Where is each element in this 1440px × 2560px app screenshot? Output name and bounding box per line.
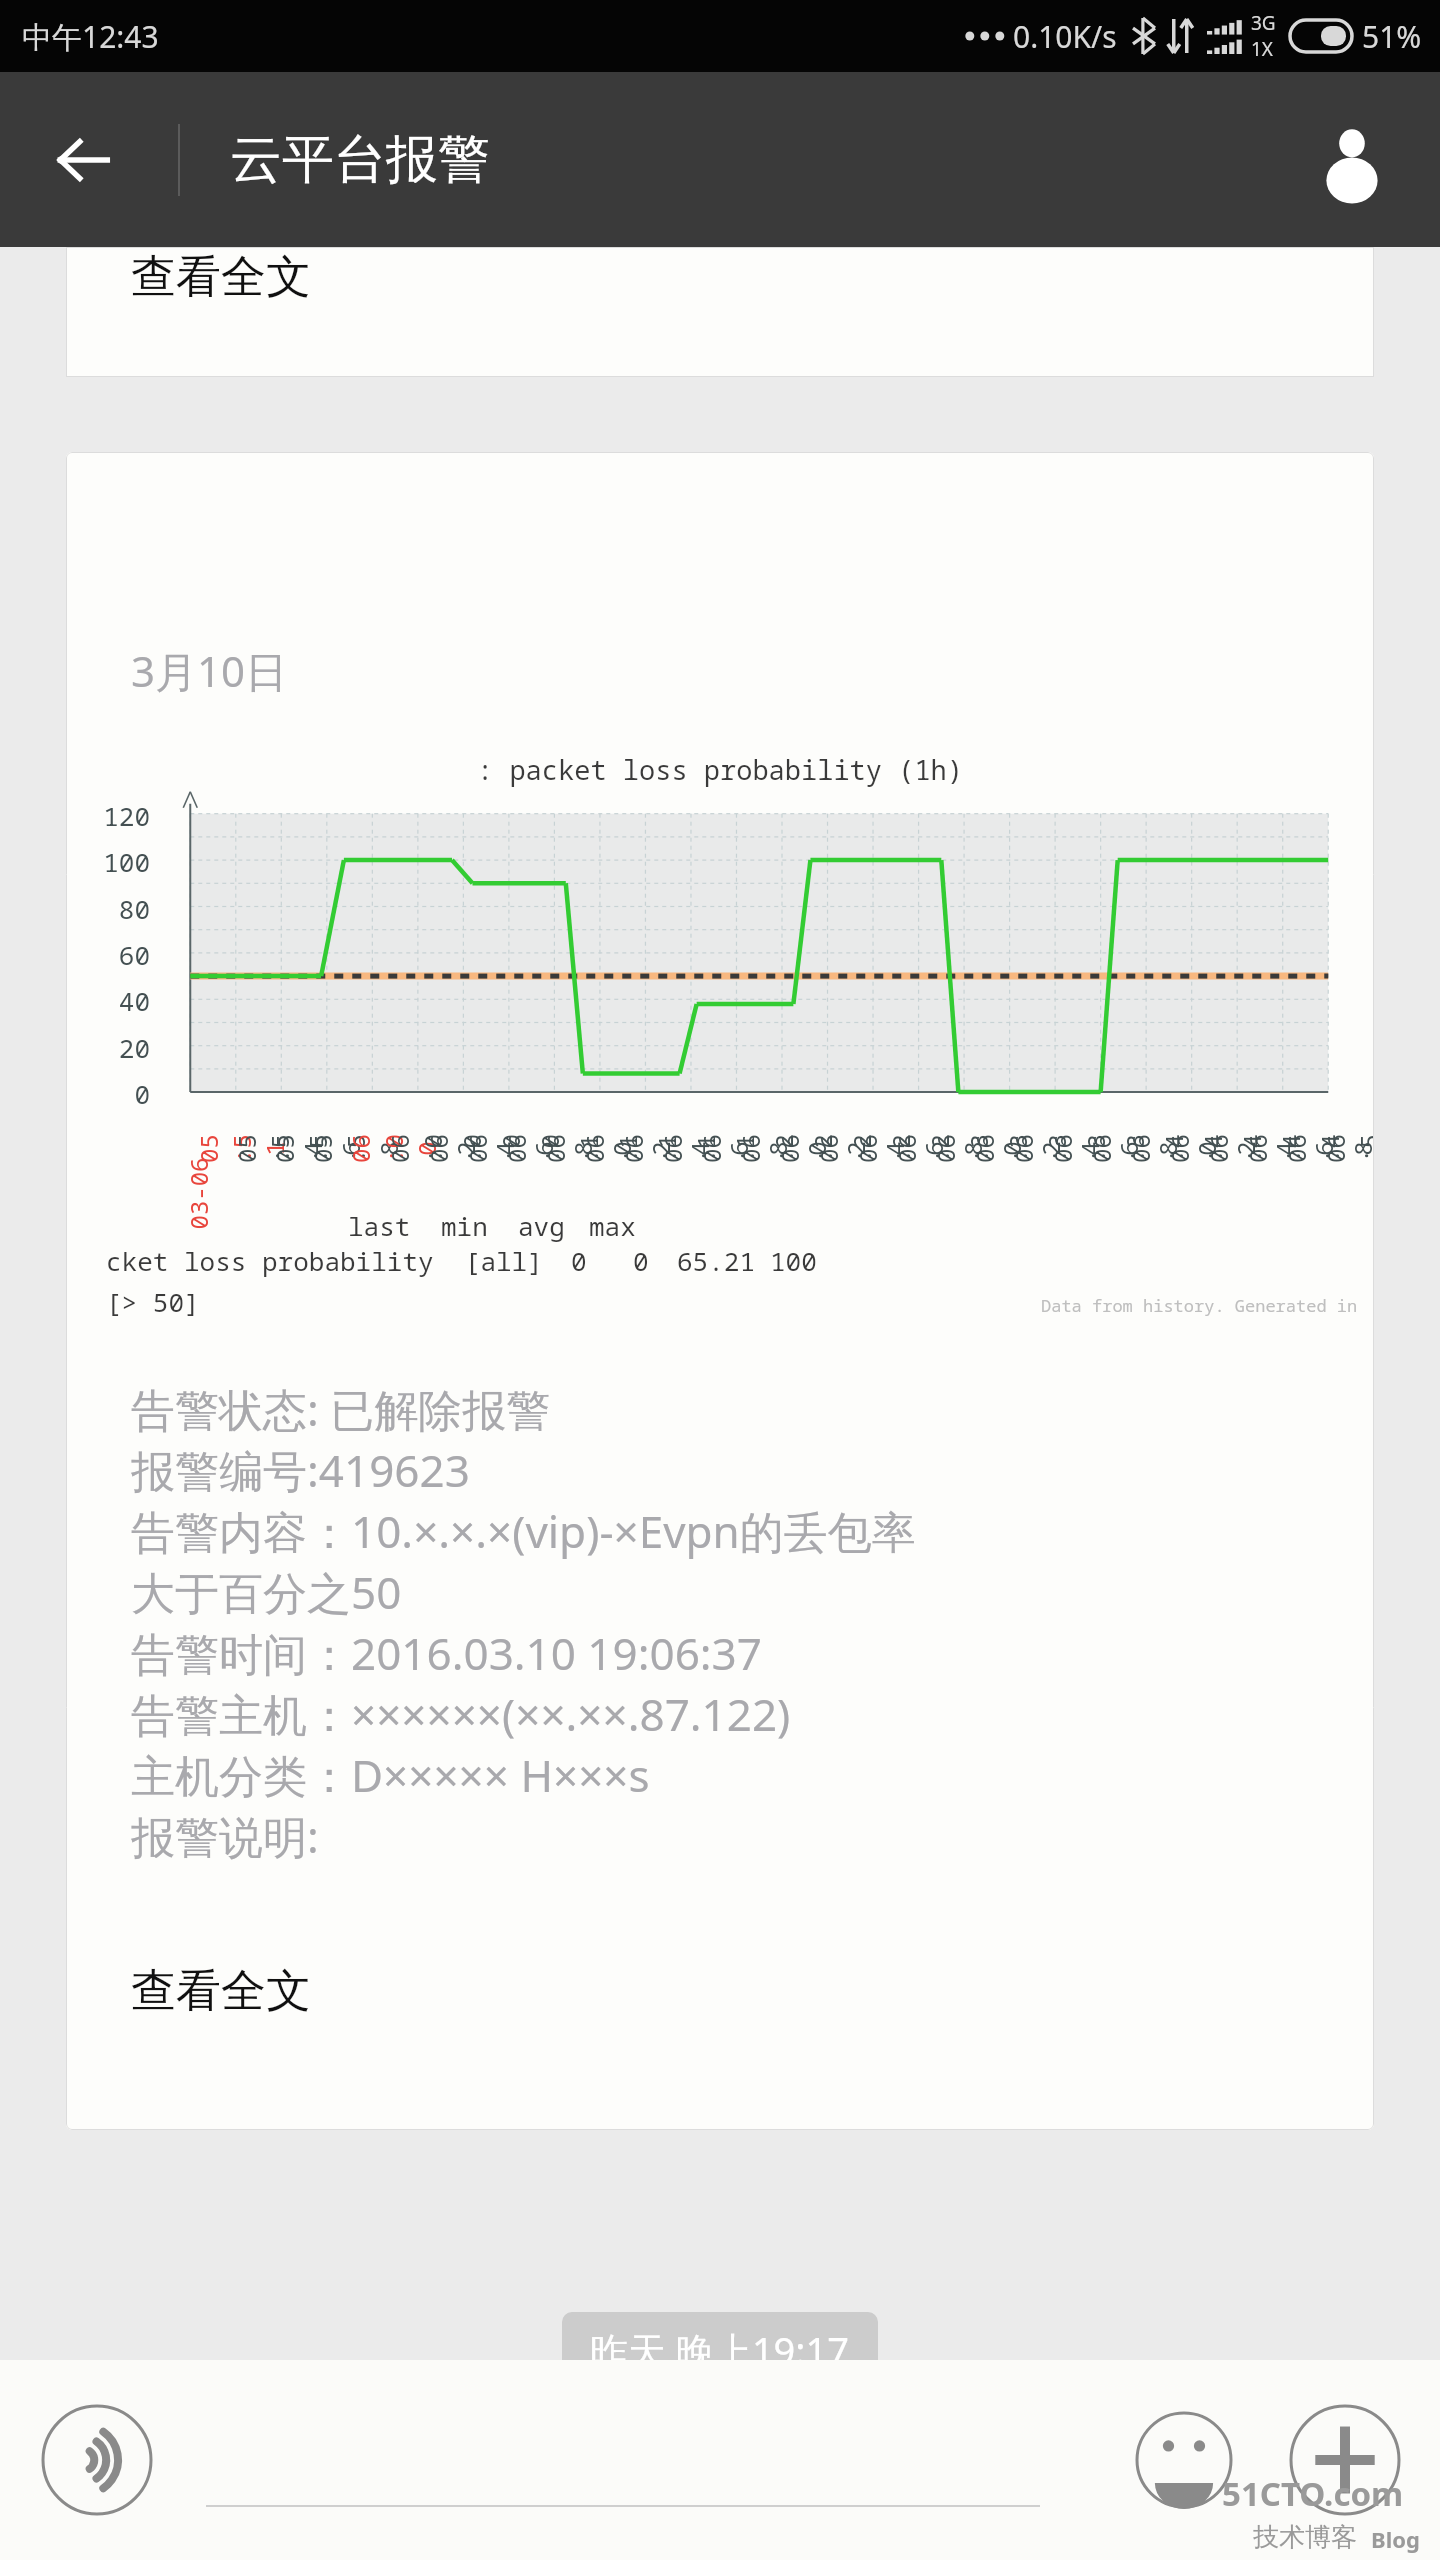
button[interactable]: Emoji <box>1124 2400 1244 2520</box>
staticText: 65.21 <box>677 1243 756 1278</box>
staticText: cket loss probability [all] <box>106 1243 543 1278</box>
button[interactable]: 查看全文 <box>131 249 311 306</box>
staticText: 06:36 <box>1046 1129 1145 1168</box>
button[interactable]: Back <box>40 117 126 203</box>
staticText: 06:42 <box>1163 1129 1262 1168</box>
staticText: 06:18 <box>695 1129 794 1168</box>
staticText: 0.10K/s <box>1013 16 1117 57</box>
staticText: Data from history. Generated in <box>1041 1294 1358 1317</box>
staticText: 06:38 <box>1085 1129 1184 1168</box>
button[interactable]: Profile <box>1306 114 1398 206</box>
staticText: 云平台报警 <box>230 127 490 193</box>
staticText: 06:08 <box>500 1129 599 1168</box>
staticText: 报警说明: <box>131 1806 319 1866</box>
staticText: 06:00 <box>344 1129 443 1168</box>
staticText: 06:26 <box>851 1129 950 1168</box>
staticText: 06:28 <box>890 1129 989 1168</box>
staticText: 06:04 <box>422 1129 521 1168</box>
button[interactable]: 查看全文 <box>131 1963 311 2020</box>
staticText: Blog <box>1371 2524 1420 2554</box>
staticText: 主机分类：D××××× H×××s <box>131 1745 650 1805</box>
staticText: 05:54 <box>229 1129 328 1167</box>
staticText: 技术博客 <box>1253 2521 1357 2554</box>
staticText: 0 <box>78 1076 150 1111</box>
staticText: 06:48 <box>1280 1129 1374 1168</box>
staticText: 3G <box>1251 10 1276 36</box>
staticText: min <box>441 1208 488 1243</box>
staticText: 告警内容：10.×.×.×(vip)-×Evpn的丢包率 <box>131 1501 916 1561</box>
staticText: 100 <box>770 1243 817 1278</box>
button[interactable]: More <box>1280 2395 1410 2525</box>
staticText: 大于百分之50 <box>131 1562 402 1622</box>
staticText: 40 <box>78 983 150 1018</box>
staticText: 20 <box>78 1030 150 1065</box>
staticText: last <box>348 1208 411 1243</box>
staticText: 0 <box>571 1243 587 1278</box>
staticText: 51% <box>1362 16 1422 57</box>
staticText: 120 <box>78 798 150 833</box>
staticText: 80 <box>78 891 150 926</box>
staticText: 06:30 <box>929 1129 1028 1168</box>
staticText: 06:24 <box>812 1129 911 1168</box>
staticText: avg <box>518 1208 565 1243</box>
staticText: 06:20 <box>734 1129 833 1168</box>
staticText: 05:58 <box>305 1129 404 1167</box>
staticText: 1X <box>1251 36 1274 62</box>
staticText: 昨天 晚上19:17 <box>590 2324 850 2376</box>
staticText: 05:56 <box>267 1129 366 1167</box>
staticText: 100 <box>78 844 150 879</box>
staticText: 报警编号:419623 <box>131 1440 470 1500</box>
staticText: 0 <box>633 1243 649 1278</box>
staticText: 06:32 <box>968 1129 1067 1168</box>
staticText: 中午12:43 <box>22 16 159 57</box>
staticText: 06:06 <box>461 1129 560 1168</box>
staticText: 60 <box>78 937 150 972</box>
staticText: 06:46 <box>1241 1129 1340 1168</box>
staticText: 05:51 <box>191 1129 290 1167</box>
staticText: 03-06 <box>181 1157 214 1229</box>
staticText: 06:14 <box>617 1129 716 1168</box>
staticText: 06:10 <box>539 1129 638 1168</box>
staticText: 06:40 <box>1124 1129 1223 1168</box>
staticText: 3月10日 <box>131 642 288 699</box>
staticText: : packet loss probability (1h) <box>477 751 963 788</box>
staticText: 06:50 <box>1319 1129 1374 1168</box>
staticText: 06:16 <box>656 1129 755 1168</box>
staticText: 06:34 <box>1007 1129 1106 1168</box>
staticText: 告警主机：××××××(××.××.87.122) <box>131 1684 791 1744</box>
staticText: 06:44 <box>1202 1129 1301 1168</box>
staticText: 06:22 <box>773 1129 872 1168</box>
staticText: 06:02 <box>383 1129 482 1168</box>
staticText: 告警状态: 已解除报警 <box>131 1379 551 1439</box>
staticText: [> 50] <box>106 1284 200 1319</box>
staticText: 51CTO.com <box>1222 2471 1404 2516</box>
staticText: 告警时间：2016.03.10 19:06:37 <box>131 1623 762 1683</box>
staticText: max <box>589 1208 636 1243</box>
staticText: 06:12 <box>578 1129 677 1168</box>
button[interactable]: Voice input <box>32 2395 162 2525</box>
